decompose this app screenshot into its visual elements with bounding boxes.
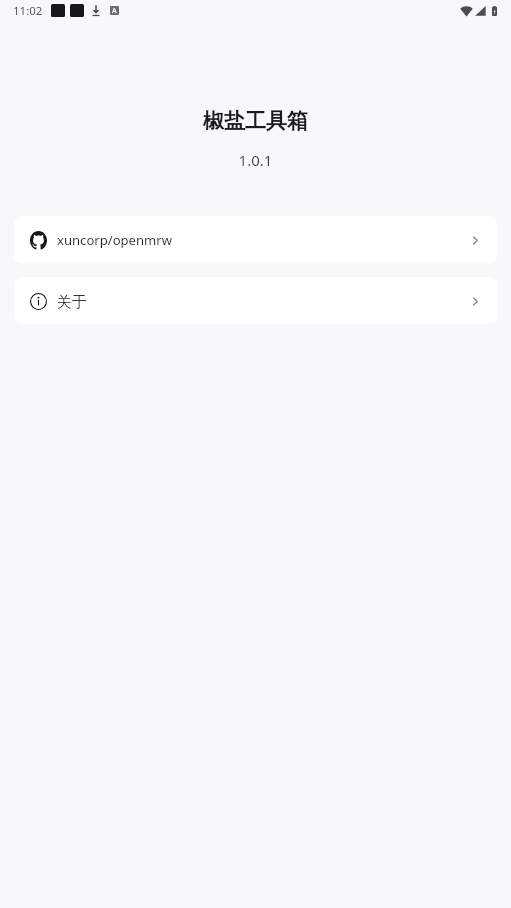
staticText: A: [112, 6, 117, 15]
staticText: 关于: [57, 293, 87, 312]
button[interactable]: Open GitHub repository: [14, 216, 497, 263]
staticText: 11:02: [13, 3, 43, 19]
staticText: 1.0.1: [0, 150, 511, 170]
staticText: 椒盐工具箱: [0, 108, 511, 134]
staticText: xuncorp/openmrw: [57, 231, 173, 249]
other: Open 关于: [469, 295, 482, 308]
other: Open xuncorp/openmrw: [469, 234, 482, 247]
button[interactable]: About: [14, 277, 497, 324]
